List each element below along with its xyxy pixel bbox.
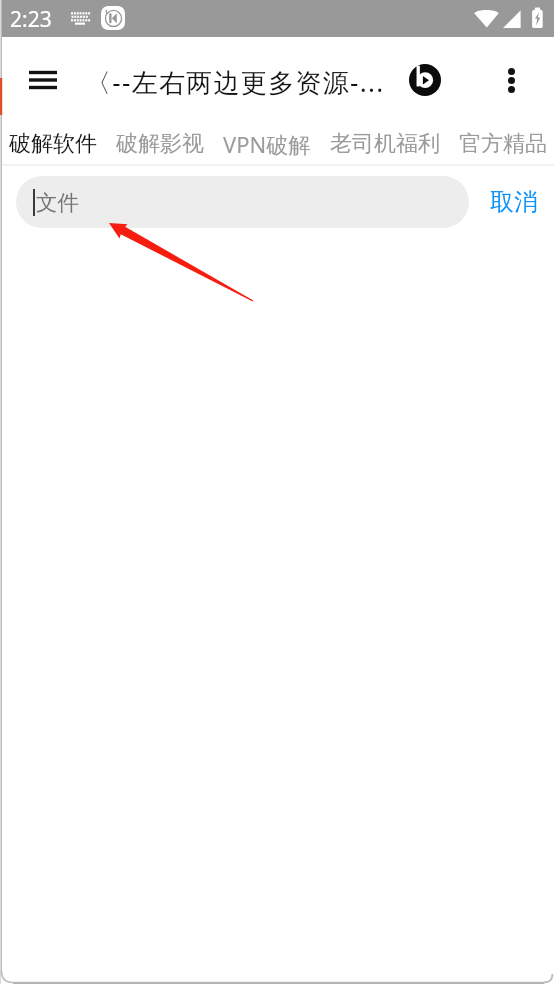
- staticText: 〈--左右两边更多资源-...: [85, 64, 385, 100]
- button[interactable]: 取消: [487, 176, 541, 228]
- button[interactable]: Beats music: [401, 56, 449, 104]
- button[interactable]: 破解软件: [9, 122, 97, 166]
- staticText: 官方精品: [459, 130, 547, 158]
- staticText: 文件: [36, 189, 79, 216]
- button[interactable]: 老司机福利: [330, 122, 440, 166]
- staticText: 破解软件: [9, 130, 97, 158]
- button[interactable]: 官方精品: [459, 122, 547, 166]
- button[interactable]: 文件: [16, 176, 469, 228]
- button[interactable]: VPN破解: [223, 122, 311, 166]
- staticText: 取消: [490, 187, 538, 217]
- button[interactable]: More options: [488, 56, 534, 104]
- staticText: 老司机福利: [330, 130, 440, 158]
- button[interactable]: 破解影视: [116, 122, 204, 166]
- button[interactable]: Navigation menu: [16, 56, 70, 104]
- staticText: VPN破解: [223, 129, 311, 159]
- staticText: 2:23: [10, 5, 52, 34]
- staticText: 破解影视: [116, 130, 204, 158]
